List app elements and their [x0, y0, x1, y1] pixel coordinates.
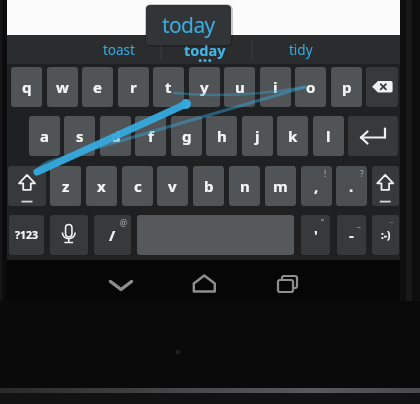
button[interactable]: t: [153, 67, 184, 107]
staticText: _: [357, 217, 361, 228]
button[interactable]: [8, 166, 46, 206]
staticText: f: [148, 126, 154, 146]
staticText: u: [235, 77, 245, 97]
button[interactable]: l: [313, 116, 344, 156]
button[interactable]: ': [301, 215, 330, 255]
button[interactable]: y: [189, 67, 220, 107]
button[interactable]: n: [229, 166, 260, 206]
staticText: /: [109, 225, 116, 245]
staticText: e: [93, 77, 102, 97]
button[interactable]: h: [206, 116, 237, 156]
button[interactable]: z: [50, 166, 81, 206]
staticText: ?123: [15, 228, 39, 242]
staticText: a: [40, 126, 49, 146]
button[interactable]: q: [11, 67, 42, 107]
button[interactable]: [103, 268, 139, 302]
staticText: m: [273, 176, 288, 196]
staticText: ?: [360, 168, 364, 179]
staticText: @: [120, 217, 128, 228]
staticText: j: [255, 126, 260, 146]
button[interactable]: ?123: [9, 215, 44, 255]
button[interactable]: x: [86, 166, 117, 206]
staticText: i: [273, 77, 278, 97]
button[interactable]: :-): [372, 215, 399, 255]
staticText: s: [76, 126, 84, 146]
staticText: today: [162, 11, 215, 40]
button[interactable]: r: [118, 67, 149, 107]
button[interactable]: d: [100, 116, 131, 156]
staticText: x: [97, 176, 106, 196]
staticText: o: [306, 77, 316, 97]
button[interactable]: .: [336, 166, 367, 206]
button[interactable]: w: [47, 67, 78, 107]
button[interactable]: tidy: [266, 40, 336, 60]
staticText: t: [165, 77, 172, 97]
staticText: n: [240, 176, 250, 196]
button[interactable]: p: [331, 67, 362, 107]
staticText: z: [62, 176, 70, 196]
button[interactable]: /: [94, 215, 131, 255]
button[interactable]: ,: [301, 166, 332, 206]
button[interactable]: …: [348, 116, 398, 156]
button[interactable]: m: [265, 166, 296, 206]
button[interactable]: v: [157, 166, 188, 206]
button[interactable]: today: [170, 40, 240, 60]
staticText: w: [56, 77, 69, 97]
staticText: -: [349, 225, 354, 245]
staticText: l: [326, 126, 331, 146]
button[interactable]: [372, 166, 399, 206]
staticText: c: [134, 176, 142, 196]
button[interactable]: …: [50, 215, 88, 255]
staticText: y: [200, 77, 209, 97]
button[interactable]: i: [260, 67, 291, 107]
button[interactable]: g: [171, 116, 202, 156]
staticText: ': [314, 226, 318, 245]
staticText: :-): [381, 228, 391, 242]
button[interactable]: a: [29, 116, 60, 156]
staticText: r: [130, 77, 137, 97]
staticText: !: [324, 168, 327, 179]
staticText: b: [204, 176, 214, 196]
staticText: today: [184, 40, 226, 60]
staticText: g: [182, 126, 192, 146]
button[interactable]: [269, 266, 305, 300]
button[interactable]: b: [193, 166, 224, 206]
button[interactable]: toast: [84, 40, 154, 60]
staticText: q: [22, 77, 32, 97]
button[interactable]: c: [122, 166, 153, 206]
staticText: h: [217, 126, 227, 146]
staticText: tidy: [289, 41, 313, 59]
button[interactable]: k: [277, 116, 308, 156]
staticText: ,: [314, 176, 319, 196]
staticText: v: [168, 176, 177, 196]
button[interactable]: f: [135, 116, 166, 156]
button[interactable]: [366, 67, 398, 107]
staticText: k: [288, 126, 298, 146]
button[interactable]: [186, 266, 222, 300]
button[interactable]: s: [64, 116, 95, 156]
button[interactable]: o: [295, 67, 326, 107]
staticText: ”: [321, 217, 324, 228]
button[interactable]: j: [242, 116, 273, 156]
staticText: p: [342, 77, 352, 97]
button[interactable]: e: [82, 67, 113, 107]
staticText: d: [111, 126, 121, 146]
staticText: toast: [103, 41, 135, 59]
staticText: .: [349, 176, 354, 196]
button[interactable]: u: [224, 67, 255, 107]
staticText: …: [389, 217, 394, 225]
button[interactable]: -: [337, 215, 366, 255]
